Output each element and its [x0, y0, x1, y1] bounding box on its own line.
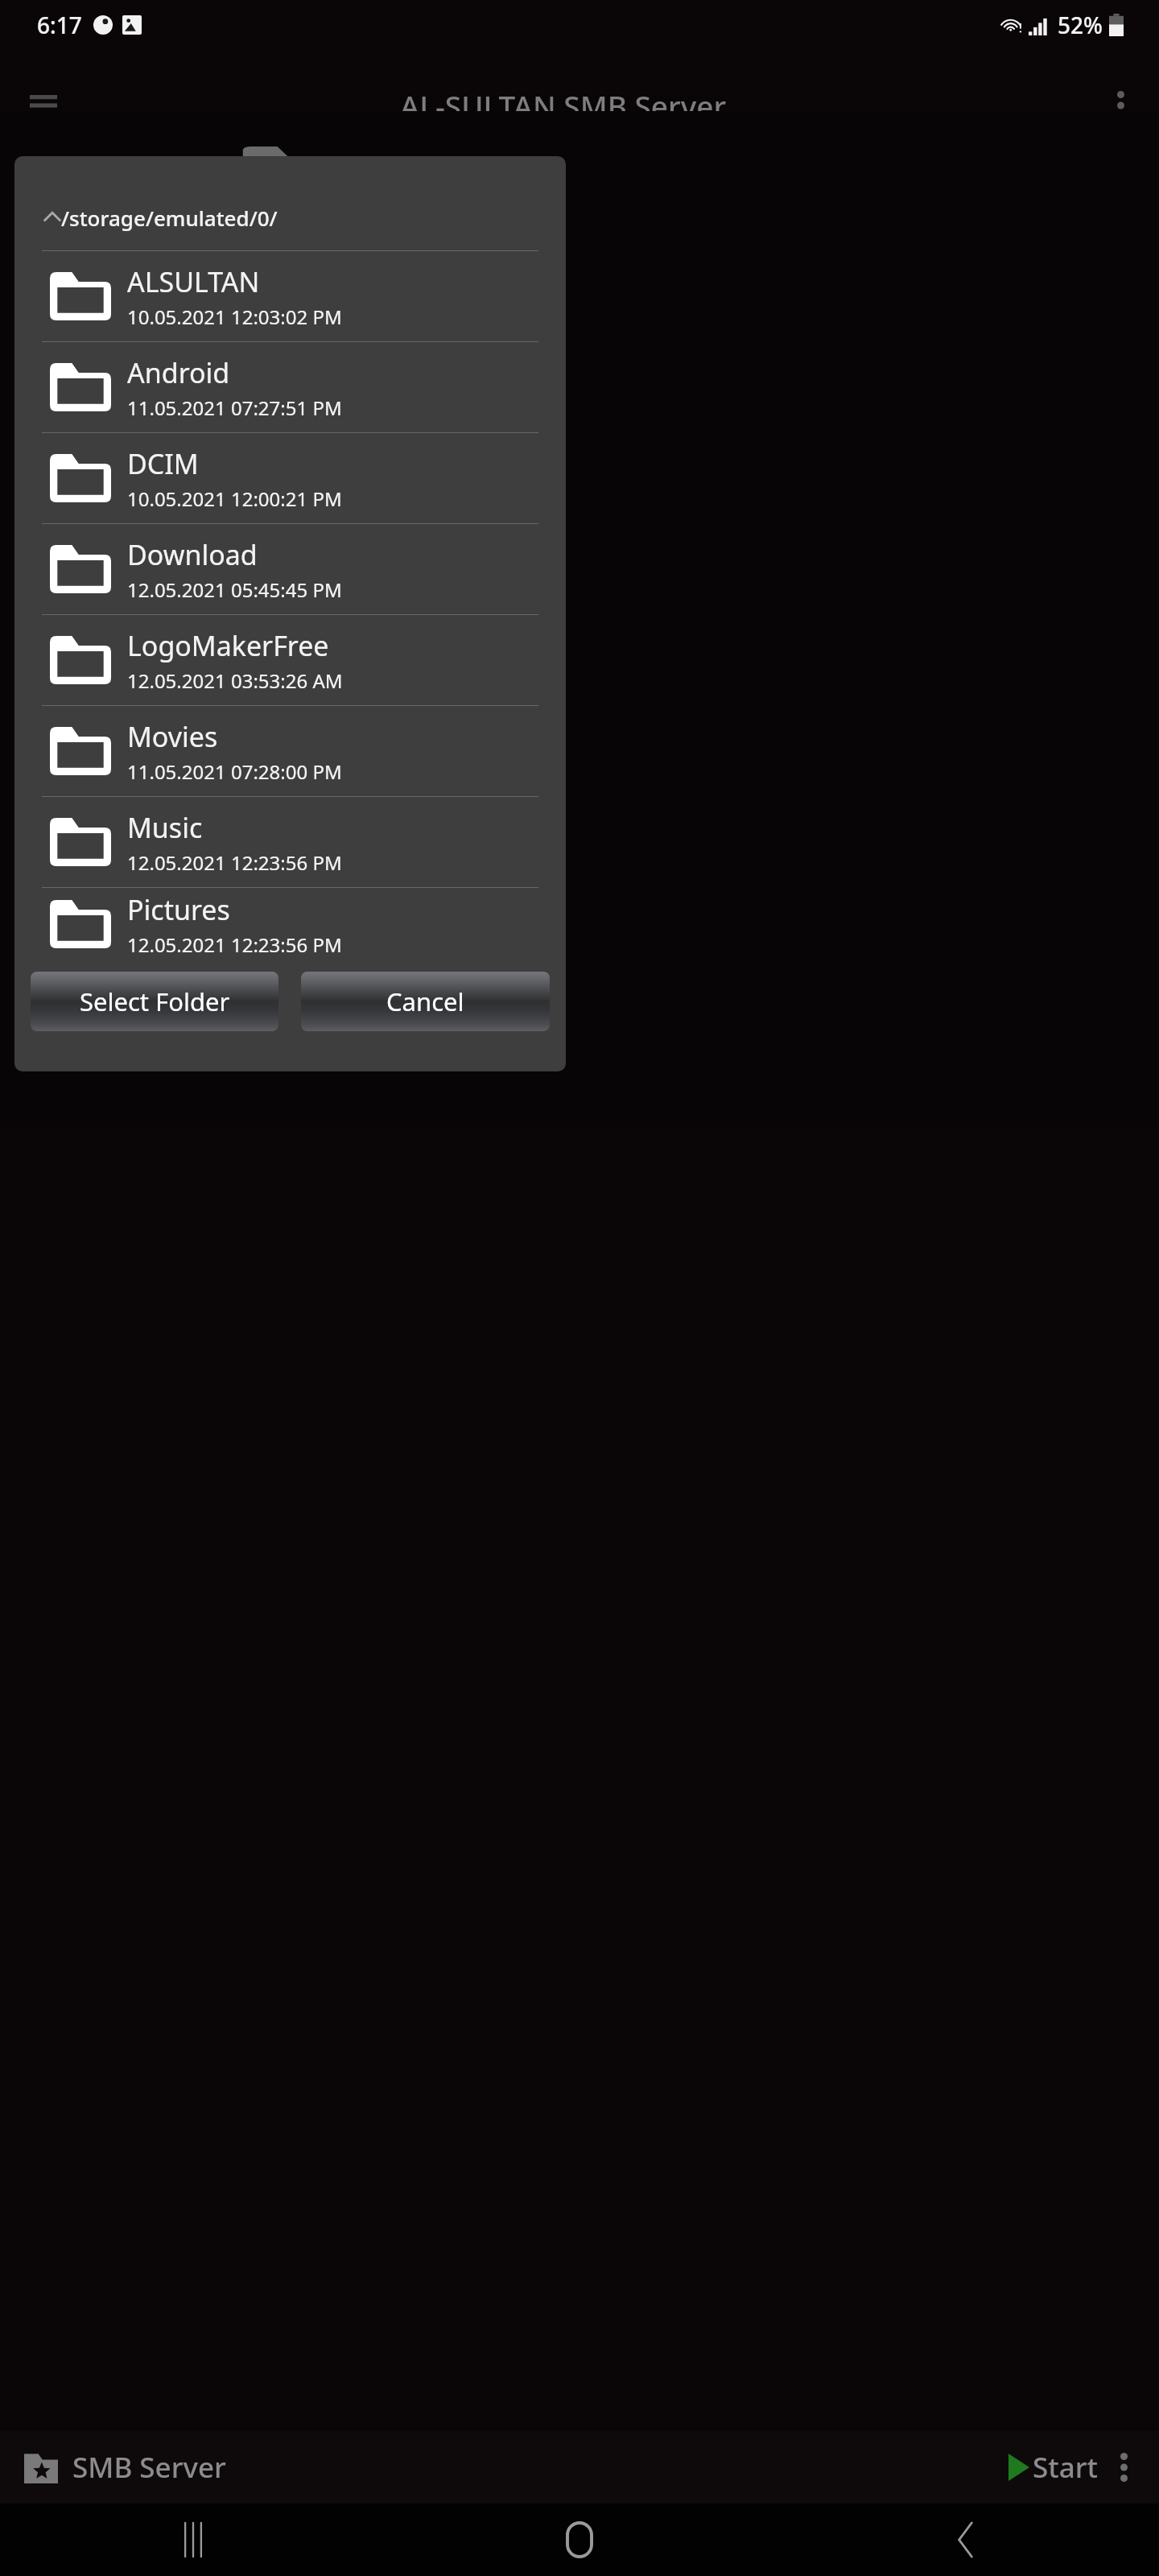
- staticText: Download: [127, 536, 258, 573]
- button[interactable]: SMB Server: [24, 2448, 226, 2487]
- staticText: 52%: [1058, 10, 1103, 40]
- button[interactable]: Back: [773, 2504, 1159, 2576]
- button[interactable]: LogoMakerFree: [14, 615, 566, 705]
- staticText: AL-SULTAN SMB Server: [400, 85, 727, 126]
- button[interactable]: Select Folder: [31, 972, 278, 1031]
- button[interactable]: Music: [14, 797, 566, 887]
- staticText: Music: [127, 809, 203, 846]
- button[interactable]: Android: [14, 342, 566, 432]
- staticText: 12.05.2021 12:23:56 PM: [127, 931, 342, 958]
- staticText: 12.05.2021 03:53:26 AM: [127, 667, 343, 694]
- button[interactable]: ALSULTAN: [14, 251, 566, 341]
- staticText: 11.05.2021 07:28:00 PM: [127, 758, 342, 785]
- other: Up one level: [43, 208, 61, 226]
- staticText: 11.05.2021 07:27:51 PM: [127, 394, 342, 421]
- staticText: 10.05.2021 12:03:02 PM: [127, 303, 342, 330]
- staticText: Cancel: [386, 985, 464, 1018]
- button[interactable]: DCIM: [14, 433, 566, 523]
- staticText: 12.05.2021 05:45:45 PM: [127, 576, 342, 603]
- staticText: Select Folder: [80, 985, 230, 1018]
- button[interactable]: Download: [14, 524, 566, 614]
- button[interactable]: Start: [1008, 2448, 1098, 2487]
- staticText: 12.05.2021 12:23:56 PM: [127, 849, 342, 876]
- button[interactable]: Pictures: [14, 888, 566, 960]
- staticText: DCIM: [127, 445, 199, 482]
- button[interactable]: Cancel: [301, 972, 550, 1031]
- staticText: Movies: [127, 718, 218, 755]
- staticText: /storage/emulated/0/: [61, 204, 278, 232]
- staticText: Start: [1033, 2448, 1098, 2487]
- staticText: ALSULTAN: [127, 263, 260, 300]
- staticText: SMB Server: [72, 2448, 226, 2487]
- button[interactable]: Home: [386, 2504, 773, 2576]
- button[interactable]: More options: [1093, 78, 1148, 133]
- staticText: LogoMakerFree: [127, 627, 329, 664]
- staticText: 6:17: [37, 10, 82, 40]
- staticText: 10.05.2021 12:00:21 PM: [127, 485, 342, 512]
- button[interactable]: Recents: [0, 2504, 386, 2576]
- button[interactable]: More options: [1098, 2442, 1149, 2493]
- button[interactable]: Movies: [14, 706, 566, 796]
- button[interactable]: Up one level: [14, 194, 566, 241]
- button[interactable]: Open navigation drawer: [16, 78, 71, 133]
- staticText: Android: [127, 354, 230, 391]
- staticText: Pictures: [127, 891, 230, 928]
